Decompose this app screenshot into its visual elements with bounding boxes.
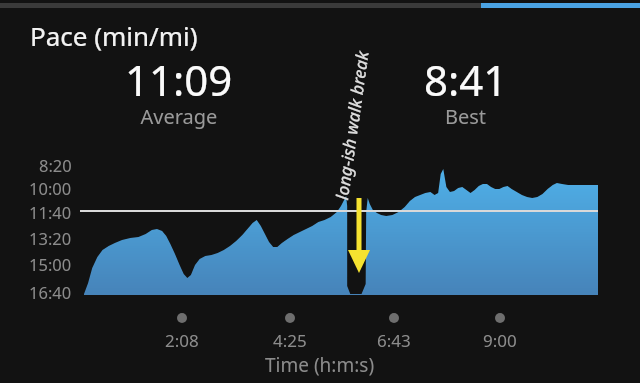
button[interactable]: Pace chart [0, 0, 640, 383]
